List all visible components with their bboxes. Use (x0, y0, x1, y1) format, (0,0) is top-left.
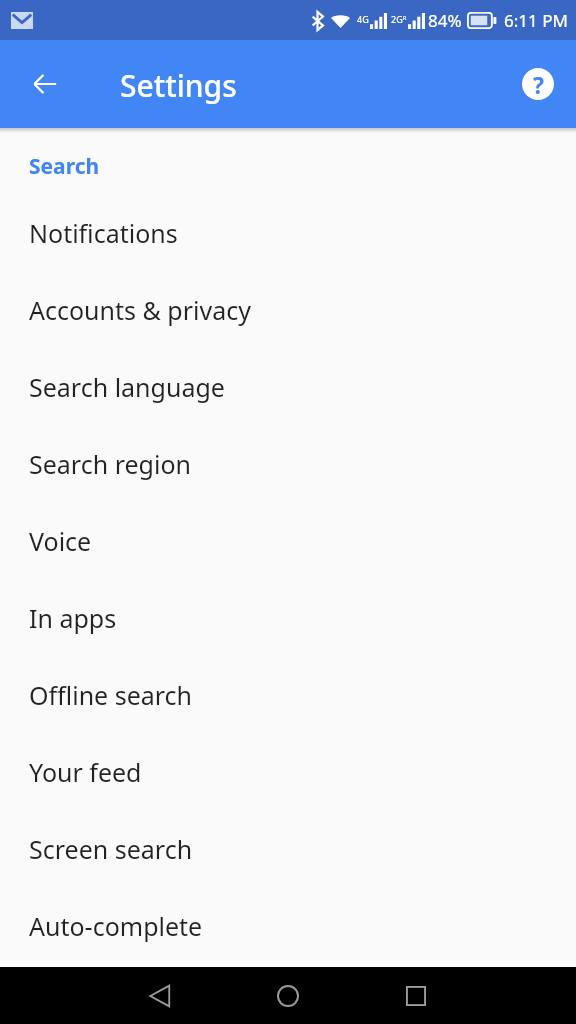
staticText: Voice (29, 524, 92, 558)
button[interactable]: In apps (0, 579, 576, 656)
staticText: Search language (29, 370, 225, 404)
button[interactable]: Screen search (0, 810, 576, 887)
button[interactable]: Voice (0, 502, 576, 579)
staticText: 4G (357, 13, 369, 25)
staticText: Settings (120, 65, 237, 106)
button[interactable]: Offline search (0, 656, 576, 733)
button[interactable]: Notifications (0, 194, 576, 271)
staticText: Screen search (29, 832, 193, 866)
staticText: Accounts & privacy (29, 293, 251, 327)
button[interactable]: Back (21, 60, 69, 108)
staticText: 84% (428, 9, 462, 32)
button[interactable]: Search region (0, 425, 576, 502)
staticText: 2Gᴿ (391, 13, 407, 25)
button[interactable]: Accounts & privacy (0, 271, 576, 348)
staticText: Notifications (29, 216, 178, 250)
staticText: ? (533, 69, 544, 100)
staticText: Search region (29, 447, 191, 481)
staticText: Your feed (29, 755, 142, 789)
staticText: In apps (29, 601, 117, 635)
staticText: Auto-complete (29, 909, 203, 943)
staticText: 6:11 PM (504, 9, 568, 32)
button[interactable]: Back (134, 970, 186, 1022)
button[interactable]: Your feed (0, 733, 576, 810)
button[interactable]: Recent apps (390, 970, 442, 1022)
button[interactable]: Auto-complete (0, 887, 576, 964)
button[interactable]: Home (262, 970, 314, 1022)
button[interactable]: Search language (0, 348, 576, 425)
button[interactable]: Help (514, 60, 562, 108)
staticText: Search (29, 152, 100, 181)
staticText: Offline search (29, 678, 193, 712)
